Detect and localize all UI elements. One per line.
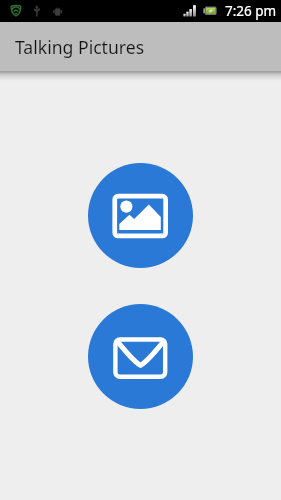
staticText: 7:26 pm [225,2,277,20]
button[interactable]: Send message [88,304,193,409]
staticText: Talking Pictures [15,35,145,59]
button[interactable]: Choose picture [88,163,193,268]
